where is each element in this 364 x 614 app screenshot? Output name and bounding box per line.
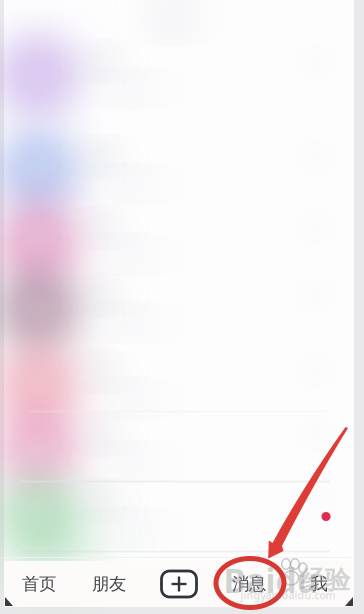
staticText: 消息 (232, 573, 266, 595)
button[interactable]: 首页 (4, 561, 74, 607)
staticText: Baidu (223, 558, 318, 602)
button[interactable]: 朋友 (74, 561, 144, 607)
button[interactable]: Create (144, 561, 214, 607)
staticText: 首页 (22, 573, 56, 595)
button[interactable]: 消息 (214, 561, 284, 607)
button[interactable]: 我 (284, 561, 354, 607)
staticText: 经验 (300, 564, 350, 595)
staticText: 朋友 (92, 573, 126, 595)
staticText: 我 (310, 573, 327, 595)
staticText: jingyan.baidu.com (240, 588, 335, 602)
